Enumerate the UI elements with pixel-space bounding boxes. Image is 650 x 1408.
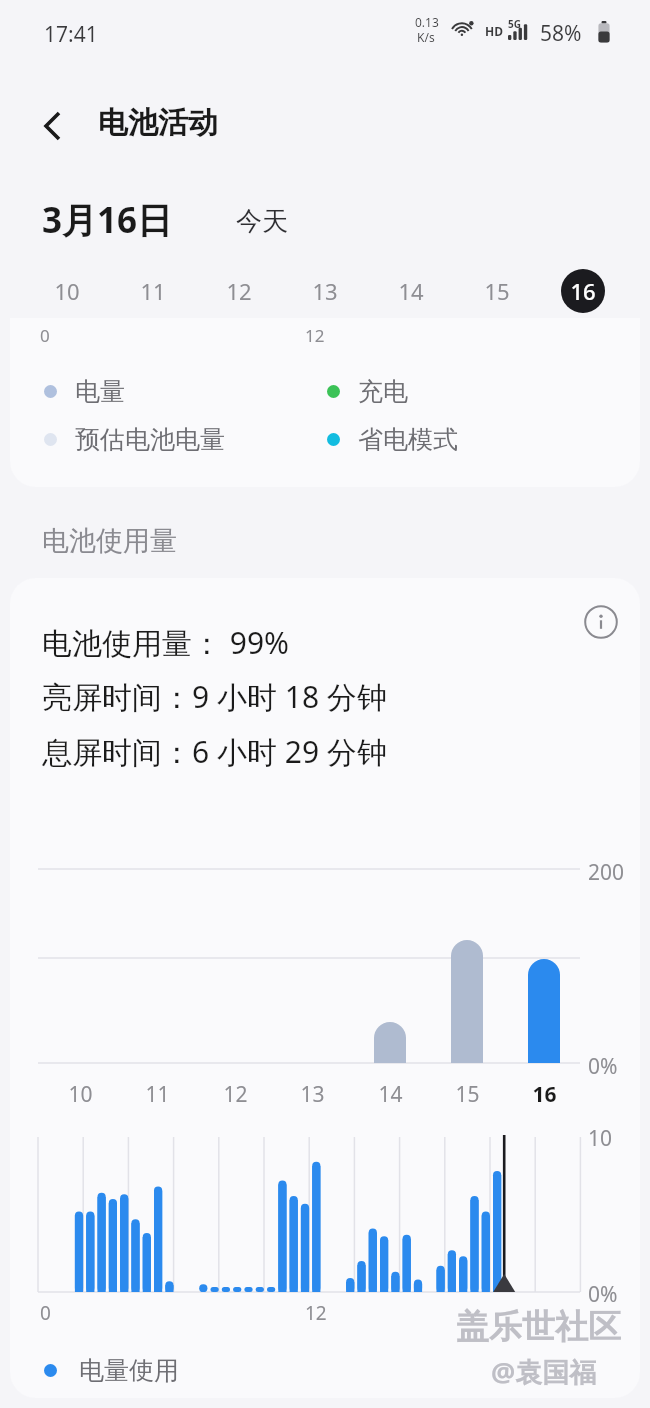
staticText: 10	[588, 1124, 613, 1153]
button[interactable]: Back	[24, 98, 80, 154]
staticText: 15	[484, 276, 510, 306]
staticText: 17:41	[44, 20, 98, 49]
button[interactable]: 预估电池电量	[36, 417, 225, 461]
staticText: 电量使用	[79, 1355, 179, 1386]
staticText: 息屏时间：6 小时 29 分钟	[42, 731, 387, 772]
button[interactable]: Info	[578, 599, 624, 645]
button[interactable]: 13	[301, 267, 349, 315]
staticText: 预估电池电量	[75, 424, 225, 455]
staticText: @袁国福	[491, 1353, 597, 1390]
staticText: 3月16日	[42, 196, 173, 244]
staticText: 0	[40, 324, 50, 347]
staticText: 13	[312, 276, 338, 306]
staticText: 0%	[588, 1280, 618, 1309]
staticText: 电量	[75, 376, 125, 407]
staticText: 今天	[236, 205, 288, 238]
button[interactable]: 电量使用	[36, 1348, 179, 1392]
staticText: 16	[532, 1080, 557, 1109]
button[interactable]: 15	[473, 267, 521, 315]
staticText: 12	[305, 324, 325, 347]
staticText: 电池使用量： 99%	[42, 622, 290, 663]
button[interactable]: 充电	[319, 369, 408, 413]
staticText: HD	[485, 23, 503, 39]
staticText: 12	[305, 1300, 327, 1326]
staticText: K/s	[417, 29, 435, 45]
staticText: 电池活动	[98, 104, 218, 142]
staticText: 盖乐世社区	[456, 1306, 621, 1348]
button[interactable]: 10	[43, 267, 91, 315]
staticText: 10	[68, 1080, 93, 1109]
button[interactable]: 12	[215, 267, 263, 315]
staticText: 12	[226, 276, 252, 306]
staticText: 11	[145, 1080, 170, 1109]
button[interactable]: 11	[129, 267, 177, 315]
button[interactable]: 省电模式	[319, 417, 458, 461]
staticText: 15	[455, 1080, 480, 1109]
staticText: 电池使用量	[42, 524, 177, 558]
staticText: 13	[300, 1080, 325, 1109]
staticText: 5G	[508, 17, 521, 31]
staticText: 12	[223, 1080, 248, 1109]
staticText: 58%	[540, 19, 582, 48]
staticText: 16	[570, 276, 596, 306]
staticText: 11	[140, 276, 166, 306]
staticText: 14	[398, 276, 424, 306]
button[interactable]: 14	[387, 267, 435, 315]
staticText: 0%	[588, 1052, 618, 1081]
staticText: 充电	[358, 376, 408, 407]
staticText: 14	[378, 1080, 403, 1109]
button[interactable]: 16	[559, 267, 607, 315]
staticText: 200	[588, 858, 625, 887]
staticText: 0	[40, 1300, 51, 1326]
staticText: 0.13	[415, 14, 439, 30]
staticText: 10	[54, 276, 80, 306]
button[interactable]: 电量	[36, 369, 125, 413]
staticText: 亮屏时间：9 小时 18 分钟	[42, 676, 387, 717]
staticText: 省电模式	[358, 424, 458, 455]
